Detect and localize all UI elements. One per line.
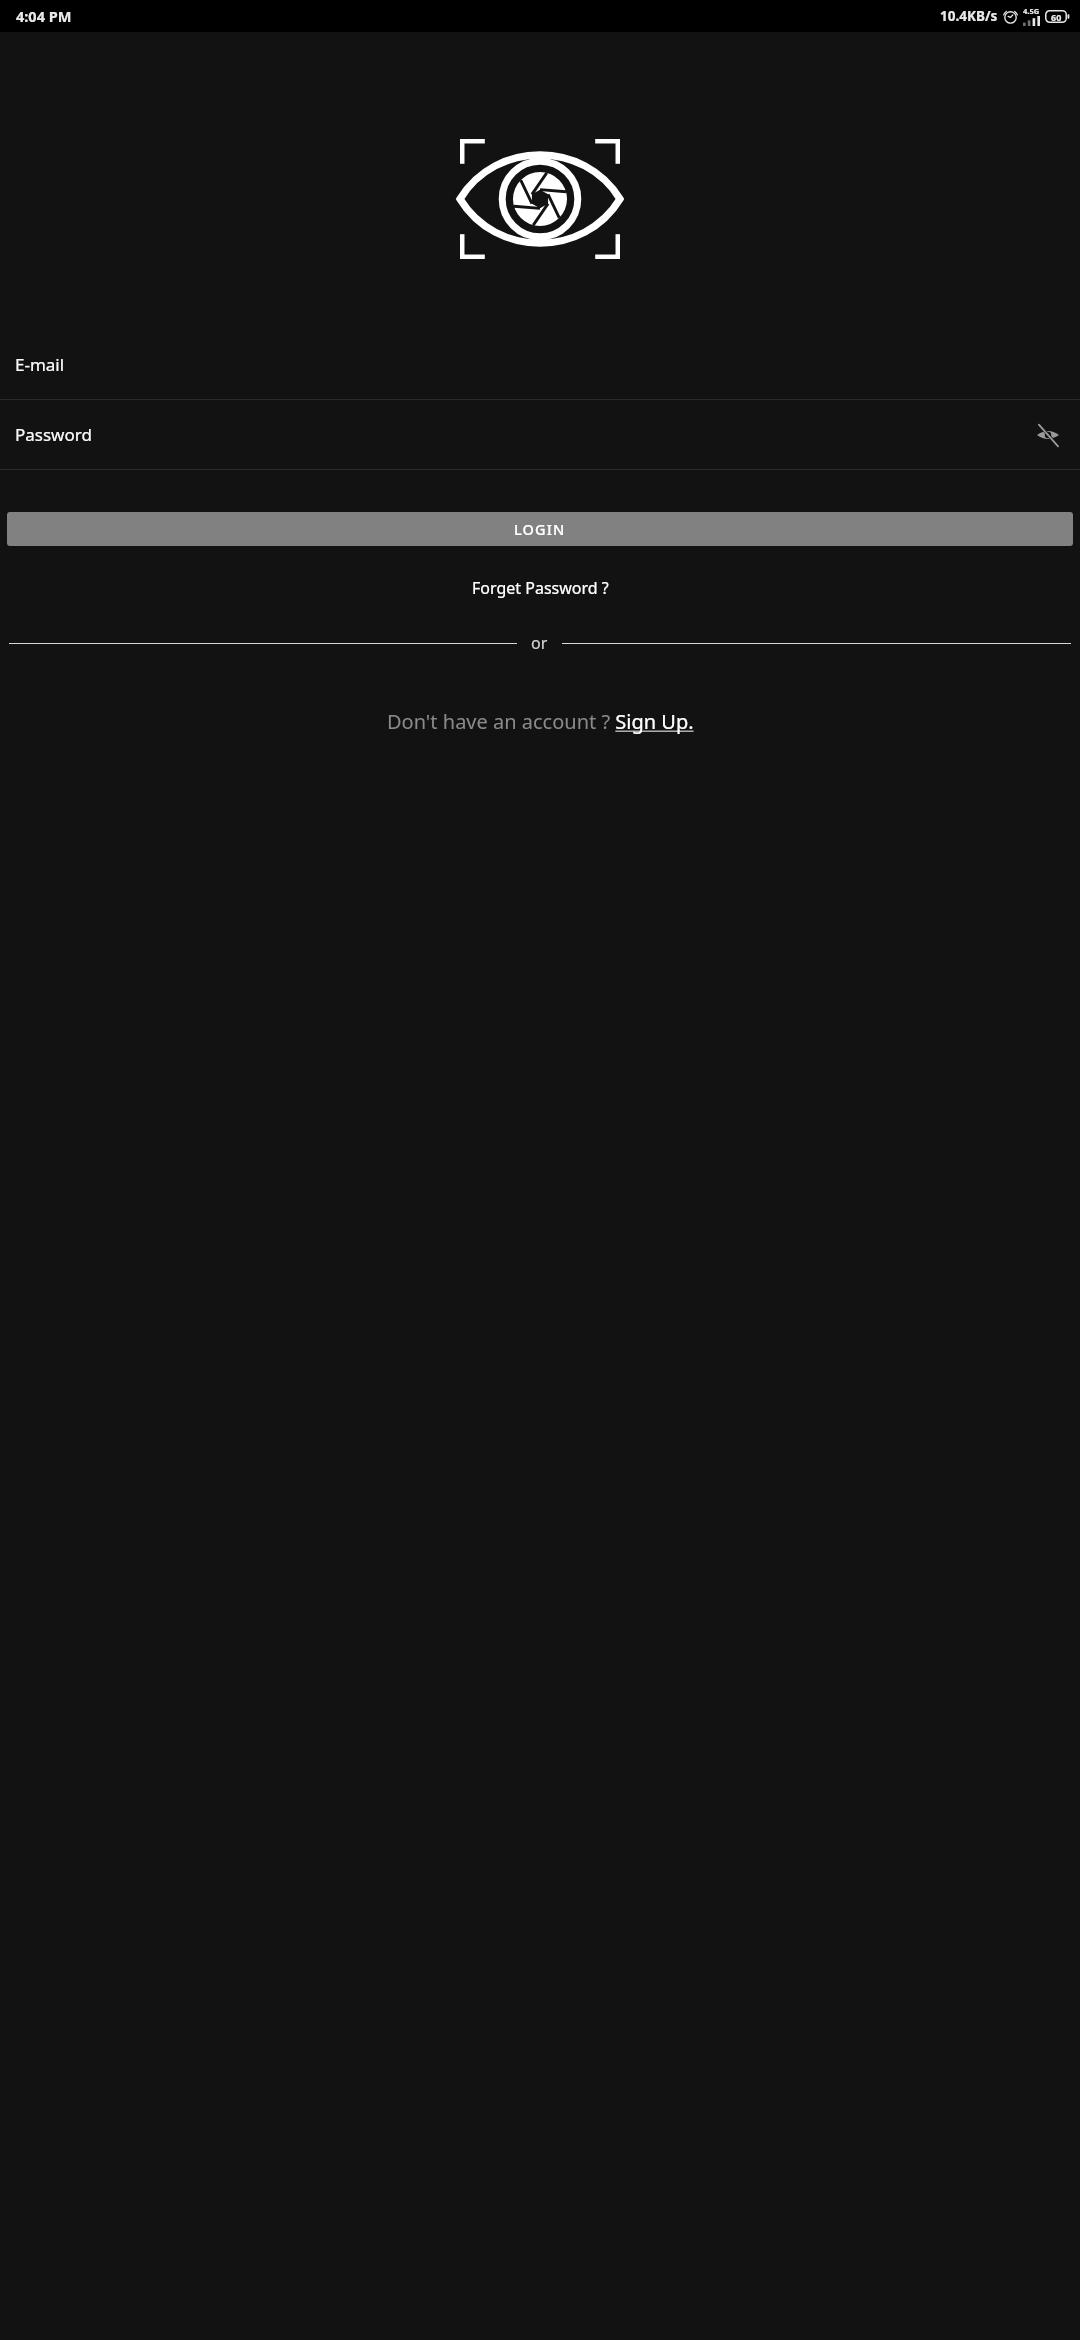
staticText: Password xyxy=(15,423,92,446)
staticText: 10.4KB/s xyxy=(940,7,998,25)
staticText: LOGIN xyxy=(514,519,566,539)
button[interactable]: Password xyxy=(0,400,1080,469)
staticText: Forget Password ? xyxy=(472,577,609,599)
button[interactable]: LOGIN xyxy=(7,512,1073,546)
button[interactable]: Show password xyxy=(1031,418,1065,452)
staticText: 4:04 PM xyxy=(16,6,72,26)
staticText: E-mail xyxy=(15,353,65,376)
button[interactable]: Don't have an account ? Sign Up. xyxy=(0,704,1080,739)
staticText: 4.5G xyxy=(1023,6,1040,16)
staticText: Don't have an account ? Sign Up. xyxy=(387,708,694,735)
button[interactable]: Forget Password ? xyxy=(0,573,1080,603)
button[interactable]: E-mail xyxy=(0,330,1080,399)
staticText: or xyxy=(531,632,548,654)
staticText: 60 xyxy=(1051,11,1062,23)
